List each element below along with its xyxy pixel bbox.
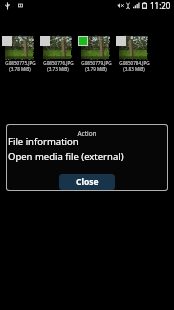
button[interactable]: Close [59, 174, 115, 190]
button[interactable]: Open media file (external) [7, 149, 167, 164]
staticText: Open media file (external) [8, 150, 124, 163]
button[interactable]: G0850776.JPG [39, 33, 77, 72]
staticText: Action [7, 129, 167, 138]
staticText: G0850776.JPG [43, 60, 74, 66]
button[interactable]: File information [7, 134, 167, 149]
staticText: File information [8, 135, 79, 148]
staticText: G0850779.JPG [81, 60, 112, 66]
staticText: 11:20 [150, 0, 171, 11]
staticText: G0850775.JPG [5, 60, 36, 66]
staticText: Close [76, 176, 99, 188]
staticText: (3.83 MiB) [123, 66, 145, 72]
staticText: (3.73 MiB) [47, 66, 69, 72]
button[interactable]: G0850779.JPG [77, 33, 115, 72]
staticText: G0850784.JPG [119, 60, 150, 66]
staticText: (3.78 MiB) [9, 66, 31, 72]
button[interactable]: G0850784.JPG [115, 33, 153, 72]
staticText: (3.79 MiB) [85, 66, 107, 72]
button[interactable]: G0850775.JPG [1, 33, 39, 72]
